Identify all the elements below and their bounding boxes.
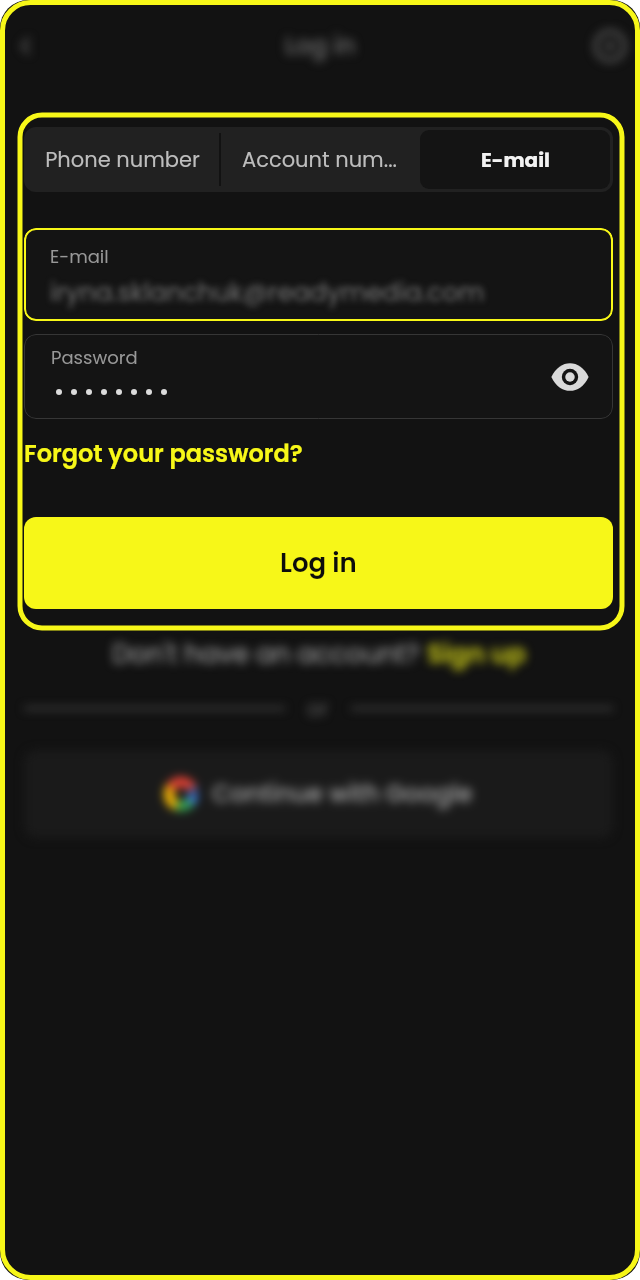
button[interactable]: Account num...: [224, 130, 414, 189]
button[interactable]: Sign up: [427, 636, 526, 672]
staticText: Don't have an account?: [112, 636, 427, 672]
staticText: Account num...: [242, 145, 397, 174]
staticText: E-mail: [50, 244, 109, 269]
button[interactable]: Forgot your password?: [24, 433, 303, 475]
button[interactable]: Back: [2, 22, 50, 70]
button[interactable]: Continue with Google: [24, 750, 613, 838]
button[interactable]: Log in: [24, 517, 613, 609]
staticText: iryna.sklanchuk@readymedia.com: [50, 275, 485, 310]
staticText: Password: [51, 345, 138, 370]
staticText: Log in: [280, 545, 357, 581]
staticText: or: [307, 694, 329, 723]
button[interactable]: E-mail: [420, 130, 610, 189]
button[interactable]: Password: [24, 334, 613, 419]
button[interactable]: Help: [584, 20, 636, 72]
button[interactable]: Phone number: [27, 130, 218, 189]
staticText: Phone number: [45, 145, 200, 174]
button[interactable]: Show password: [547, 354, 593, 400]
button[interactable]: E-mail: [24, 228, 613, 321]
staticText: Sign up: [427, 636, 526, 672]
staticText: E-mail: [481, 146, 550, 174]
staticText: Continue with Google: [212, 777, 473, 811]
staticText: Log in: [285, 29, 356, 63]
staticText: Forgot your password?: [24, 437, 303, 471]
